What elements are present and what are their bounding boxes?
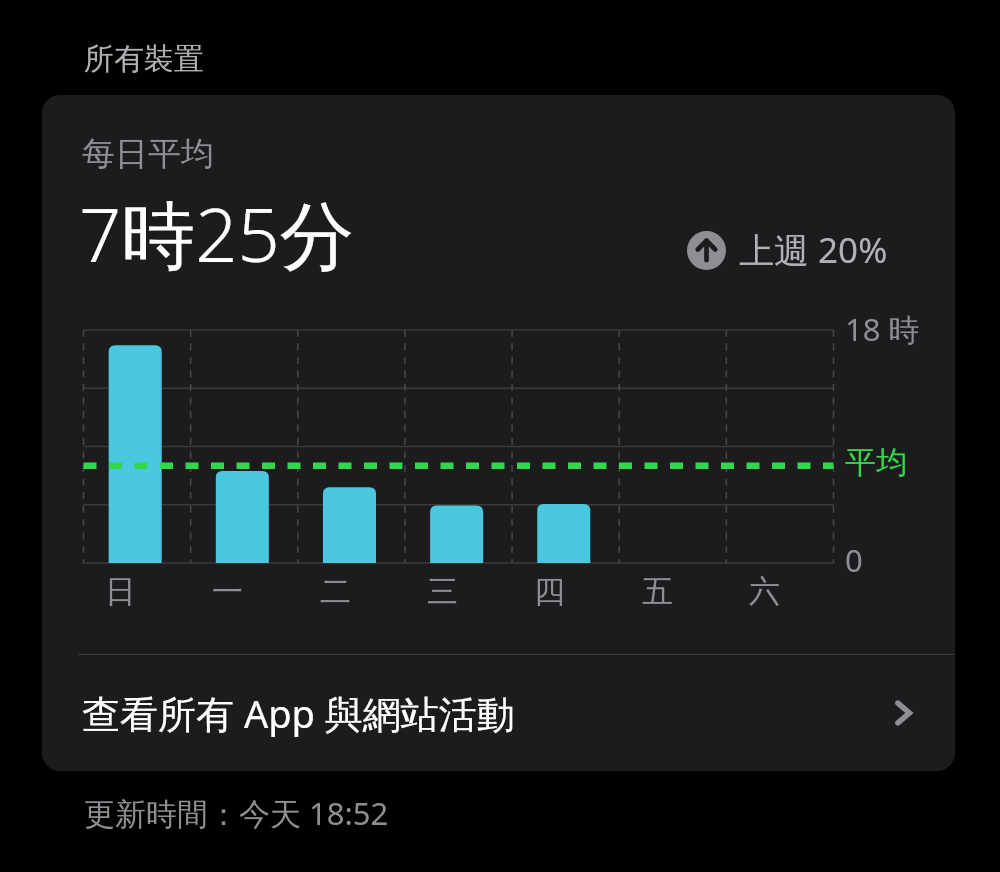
- staticText: 每日平均: [82, 133, 214, 175]
- staticText: 一: [212, 572, 243, 611]
- staticText: 7時25分: [79, 183, 354, 284]
- staticText: 二: [320, 572, 351, 611]
- staticText: 18 時: [845, 308, 920, 350]
- staticText: 上週 20%: [739, 226, 888, 274]
- staticText: 所有裝置: [84, 40, 204, 78]
- staticText: 查看所有 App 與網站活動: [82, 687, 515, 739]
- button[interactable]: 查看所有 App 與網站活動: [42, 655, 955, 771]
- staticText: 更新時間：今天 18:52: [84, 792, 389, 834]
- staticText: 0: [845, 539, 863, 581]
- other: Increased from last week: [687, 231, 726, 270]
- staticText: 五: [642, 572, 673, 611]
- staticText: 三: [427, 572, 458, 611]
- staticText: 日: [105, 572, 136, 611]
- staticText: 平均: [845, 443, 907, 482]
- staticText: 六: [749, 572, 780, 611]
- staticText: 四: [534, 572, 565, 611]
- button[interactable]: Increased from last week: [687, 226, 888, 274]
